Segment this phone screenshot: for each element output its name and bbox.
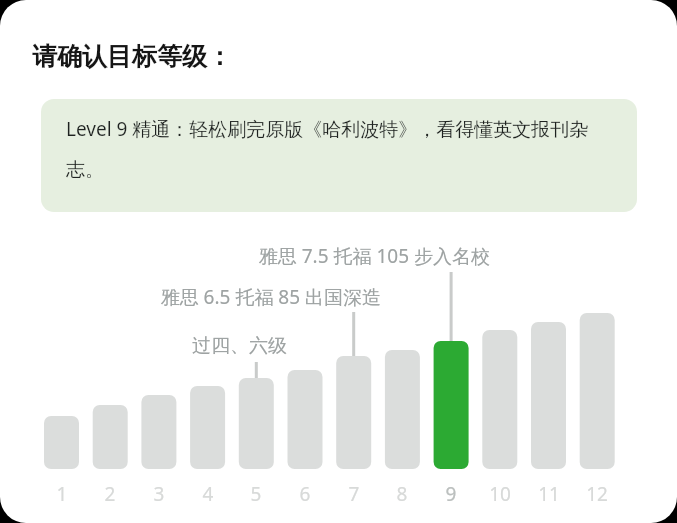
button[interactable]: 请确认目标等级： (32, 41, 232, 72)
button[interactable]: 12 (572, 481, 622, 509)
button[interactable]: 7 (329, 481, 379, 509)
staticText: 雅思 7.5 托福 105 步入名校 (60, 243, 490, 271)
staticText: 雅思 6.5 托福 85 出国深造 (0, 284, 381, 312)
button[interactable]: 1 (37, 481, 87, 509)
button[interactable]: 6 (280, 481, 330, 509)
staticText: 5 (231, 481, 281, 509)
staticText: 11 (524, 481, 574, 509)
staticText: 8 (377, 481, 427, 509)
staticText: 7 (329, 481, 379, 509)
button[interactable]: Level 9 精通：轻松刷完原版《哈利波特》，看得懂英文报刊杂志。 (41, 99, 637, 212)
staticText: 12 (572, 481, 622, 509)
button[interactable]: 2 (85, 481, 135, 509)
button[interactable]: 雅思 7.5 托福 105 步入名校 (60, 243, 490, 271)
staticText: 过四、六级 (0, 334, 287, 362)
button[interactable]: 过四、六级 (0, 334, 287, 362)
staticText: 9 (426, 481, 476, 509)
staticText: 4 (183, 481, 233, 509)
button[interactable]: 3 (134, 481, 184, 509)
staticText: 1 (37, 481, 87, 509)
button[interactable]: 11 (524, 481, 574, 509)
staticText: 10 (475, 481, 525, 509)
button[interactable]: 4 (183, 481, 233, 509)
button[interactable]: 9 (426, 481, 476, 509)
staticText: 请确认目标等级： (32, 41, 232, 72)
button[interactable]: 8 (377, 481, 427, 509)
staticText: Level 9 精通：轻松刷完原版《哈利波特》，看得懂英文报刊杂志。 (66, 116, 616, 182)
staticText: 6 (280, 481, 330, 509)
staticText: 3 (134, 481, 184, 509)
button[interactable]: 10 (475, 481, 525, 509)
staticText: 2 (85, 481, 135, 509)
button[interactable]: 雅思 6.5 托福 85 出国深造 (0, 284, 381, 312)
button[interactable]: 5 (231, 481, 281, 509)
